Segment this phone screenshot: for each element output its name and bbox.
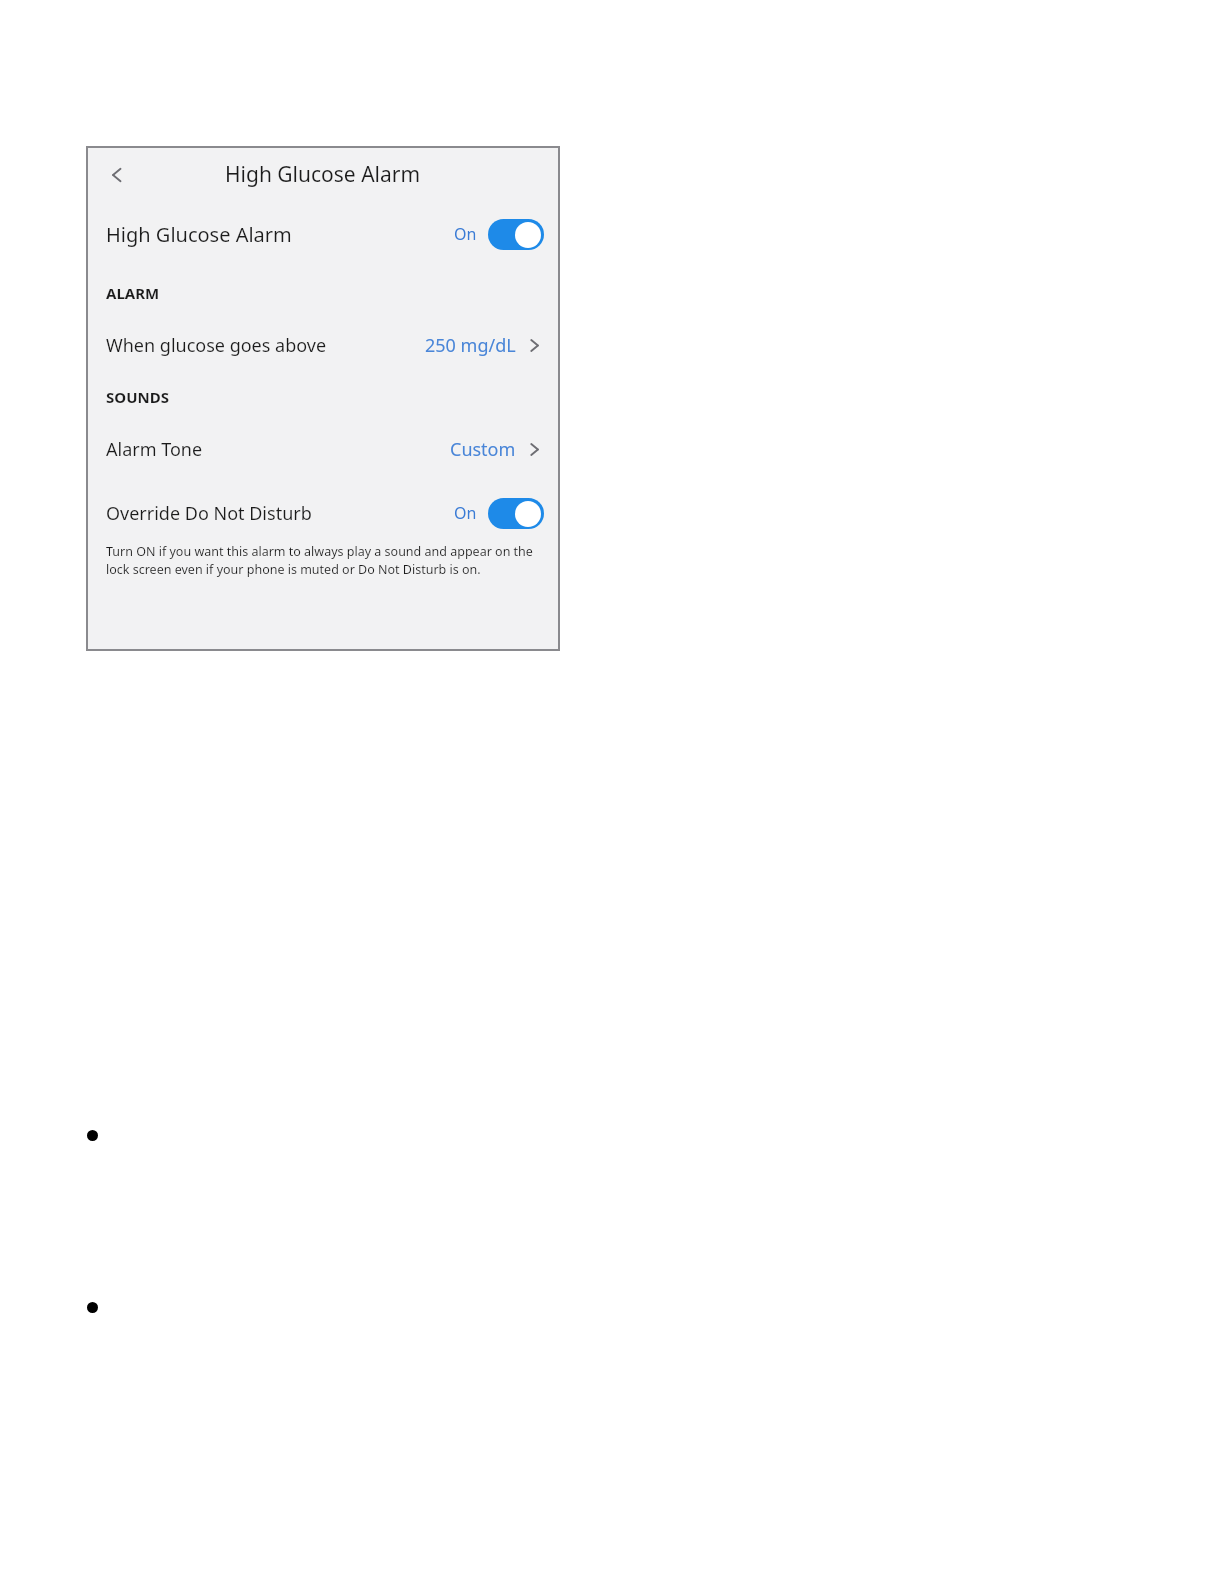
- staticText: High Glucose Alarm: [225, 160, 421, 189]
- staticText: Turn ON if you want this alarm to always…: [106, 543, 536, 577]
- staticText: Override Do Not Disturb: [106, 501, 312, 526]
- button[interactable]: High Glucose Alarm: [86, 203, 560, 265]
- button[interactable]: Back: [94, 152, 140, 198]
- staticText: When glucose goes above: [106, 333, 327, 358]
- staticText: 250 mg/dL: [425, 333, 516, 358]
- staticText: SOUNDS: [106, 387, 169, 407]
- button[interactable]: Toggle on: [488, 219, 544, 250]
- button[interactable]: Alarm Tone: [86, 429, 560, 469]
- button[interactable]: When glucose goes above: [86, 325, 560, 365]
- staticText: On: [454, 223, 477, 245]
- staticText: ALARM: [106, 283, 160, 303]
- staticText: High Glucose Alarm: [106, 221, 292, 248]
- button[interactable]: Toggle on: [488, 498, 544, 529]
- staticText: On: [454, 502, 477, 524]
- button[interactable]: Override Do Not Disturb: [86, 489, 560, 537]
- staticText: Custom: [450, 437, 516, 462]
- staticText: Alarm Tone: [106, 437, 203, 462]
